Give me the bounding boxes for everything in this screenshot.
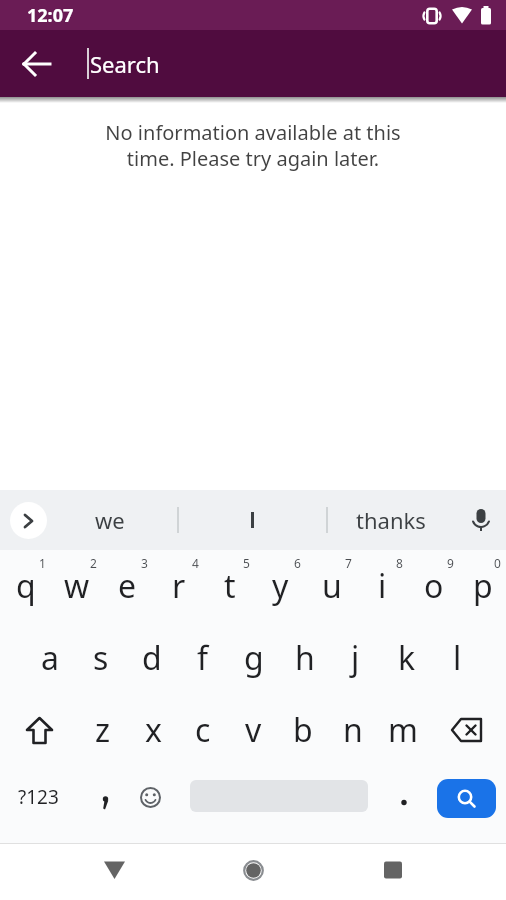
- staticText: s: [93, 636, 109, 680]
- button[interactable]: [13, 40, 61, 88]
- button[interactable]: v: [228, 694, 278, 766]
- staticText: 6: [294, 555, 301, 571]
- staticText: 4: [192, 555, 199, 571]
- staticText: c: [195, 708, 211, 752]
- button[interactable]: w: [51, 550, 102, 622]
- staticText: 7: [345, 555, 352, 571]
- staticText: a: [41, 636, 59, 680]
- staticText: l: [453, 636, 462, 680]
- button[interactable]: ?123: [0, 766, 76, 828]
- button[interactable]: o: [408, 550, 459, 622]
- staticText: t: [224, 564, 236, 608]
- staticText: n: [343, 708, 363, 752]
- button[interactable]: g: [228, 622, 279, 694]
- button[interactable]: we: [60, 490, 160, 550]
- staticText: d: [142, 636, 162, 680]
- button[interactable]: m: [378, 694, 428, 766]
- button[interactable]: q: [0, 550, 51, 622]
- button[interactable]: n: [328, 694, 378, 766]
- button[interactable]: [202, 490, 302, 550]
- staticText: x: [145, 708, 162, 752]
- staticText: z: [95, 708, 111, 752]
- staticText: 1: [39, 555, 46, 571]
- staticText: No information available at this time. P…: [0, 119, 506, 172]
- button[interactable]: k: [381, 622, 432, 694]
- button[interactable]: i: [357, 550, 408, 622]
- button[interactable]: thanks: [341, 490, 441, 550]
- staticText: j: [351, 636, 360, 680]
- staticText: 5: [243, 555, 250, 571]
- staticText: b: [293, 708, 313, 752]
- staticText: r: [172, 564, 186, 608]
- staticText: k: [398, 636, 416, 680]
- staticText: we: [95, 505, 125, 535]
- button[interactable]: [89, 845, 139, 895]
- button[interactable]: r: [153, 550, 204, 622]
- button[interactable]: [10, 502, 47, 539]
- staticText: 0: [494, 555, 501, 571]
- staticText: u: [322, 564, 342, 608]
- staticText: f: [197, 636, 209, 680]
- button[interactable]: t: [204, 550, 255, 622]
- staticText: o: [424, 564, 444, 608]
- button[interactable]: s: [75, 622, 126, 694]
- button[interactable]: h: [279, 622, 330, 694]
- staticText: v: [245, 708, 262, 752]
- button[interactable]: [380, 766, 428, 828]
- staticText: i: [378, 564, 387, 608]
- staticText: e: [118, 564, 137, 608]
- button[interactable]: [450, 492, 506, 548]
- button[interactable]: [228, 845, 278, 895]
- staticText: m: [388, 708, 418, 752]
- staticText: 3: [141, 555, 148, 571]
- button[interactable]: y: [255, 550, 306, 622]
- button[interactable]: u: [306, 550, 357, 622]
- button[interactable]: e: [102, 550, 153, 622]
- button[interactable]: b: [278, 694, 328, 766]
- staticText: 12:07: [27, 3, 74, 28]
- staticText: p: [473, 564, 493, 608]
- staticText: y: [272, 564, 289, 608]
- button[interactable]: [80, 766, 130, 828]
- button[interactable]: f: [177, 622, 228, 694]
- button[interactable]: [368, 845, 418, 895]
- button[interactable]: [428, 694, 506, 766]
- button[interactable]: a: [24, 622, 75, 694]
- button[interactable]: d: [126, 622, 177, 694]
- button[interactable]: p: [459, 550, 506, 622]
- staticText: ?123: [18, 784, 59, 810]
- staticText: q: [16, 564, 36, 608]
- button[interactable]: x: [128, 694, 178, 766]
- button[interactable]: c: [178, 694, 228, 766]
- staticText: 2: [90, 555, 97, 571]
- button[interactable]: [0, 694, 78, 766]
- button[interactable]: j: [330, 622, 381, 694]
- button[interactable]: [125, 766, 175, 828]
- button[interactable]: Search: [90, 49, 160, 79]
- staticText: g: [244, 636, 264, 680]
- staticText: w: [64, 564, 90, 608]
- staticText: 9: [447, 555, 454, 571]
- staticText: thanks: [356, 505, 426, 535]
- button[interactable]: l: [432, 622, 483, 694]
- button[interactable]: z: [78, 694, 128, 766]
- staticText: 8: [396, 555, 403, 571]
- button[interactable]: [437, 779, 496, 818]
- staticText: h: [295, 636, 315, 680]
